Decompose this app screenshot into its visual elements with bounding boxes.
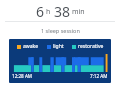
staticText: 6 (36, 2, 45, 19)
staticText: 1 sleep session (41, 27, 80, 34)
button[interactable]: awake (9, 39, 111, 83)
staticText: restorative (78, 43, 104, 50)
staticText: awake (23, 43, 39, 50)
staticText: 38 (54, 2, 71, 19)
button[interactable]: Total sleep 6 hours 38 minutes (0, 2, 120, 19)
staticText: 7:12 AM (90, 73, 108, 79)
staticText: 12:28 AM (12, 73, 33, 79)
staticText: light (53, 43, 64, 50)
staticText: min (72, 7, 85, 17)
staticText: h (46, 7, 51, 17)
